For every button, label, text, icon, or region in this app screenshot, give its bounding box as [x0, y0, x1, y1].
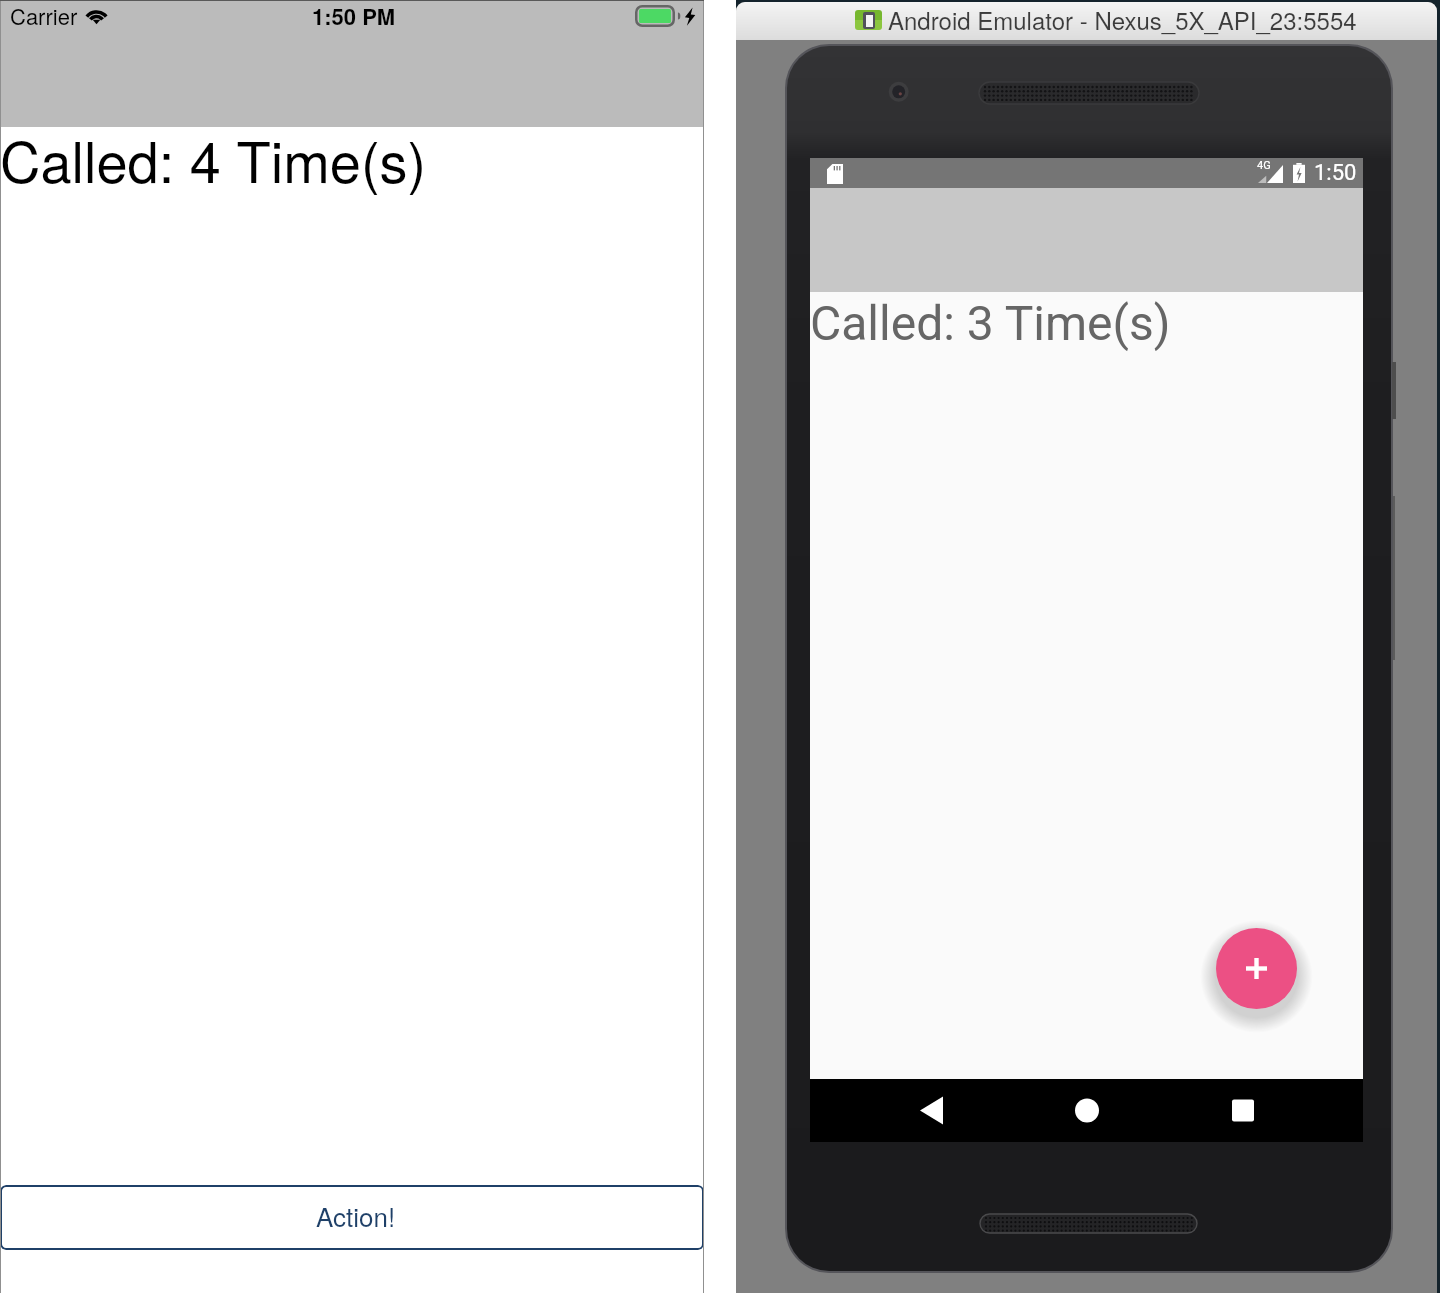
staticText: Called: 3 Time(s): [810, 295, 1171, 351]
button[interactable]: Back: [907, 1079, 967, 1142]
staticText: Android Emulator - Nexus_5X_API_23:5554: [888, 2, 1357, 36]
button[interactable]: Home: [1057, 1079, 1117, 1142]
button[interactable]: Add: [1216, 928, 1297, 1009]
button[interactable]: Recents: [1213, 1079, 1273, 1142]
staticText: Carrier: [10, 0, 78, 32]
staticText: Called: 4 Time(s): [0, 119, 427, 199]
staticText: 4G: [1257, 159, 1271, 172]
staticText: Action!: [316, 1197, 396, 1234]
staticText: 1:50 PM: [312, 0, 396, 32]
button[interactable]: Action!: [0, 1185, 704, 1250]
staticText: 1:50: [1314, 160, 1357, 186]
